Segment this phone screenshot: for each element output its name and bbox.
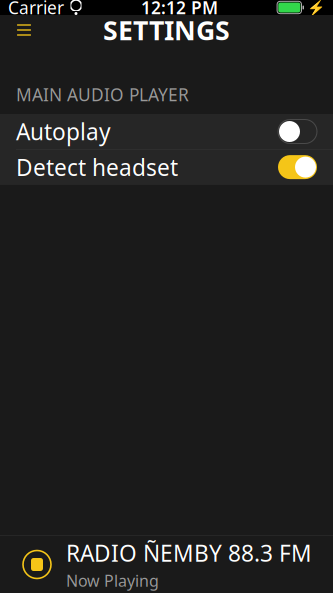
staticText: ⚡ (307, 0, 325, 16)
staticText: MAIN AUDIO PLAYER (16, 83, 189, 106)
staticText: RADIO ÑEMBY 88.3 FM (66, 538, 312, 568)
button[interactable]: Off (278, 119, 317, 143)
button[interactable]: Detect headset (0, 150, 333, 185)
button[interactable]: Menu (4, 14, 44, 46)
staticText: Carrier (8, 0, 64, 19)
button[interactable]: On (278, 155, 317, 179)
staticText: 12:12 PM (141, 0, 218, 19)
staticText: SETTINGS (103, 12, 230, 48)
staticText: Detect headset (16, 152, 178, 182)
button[interactable]: Stop (14, 541, 60, 587)
staticText: Now Playing (66, 570, 159, 591)
button[interactable]: Autoplay (0, 114, 333, 149)
staticText: Autoplay (16, 116, 111, 147)
